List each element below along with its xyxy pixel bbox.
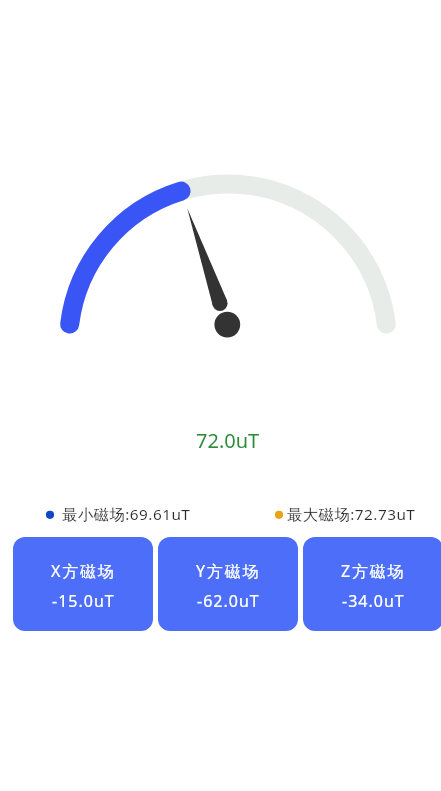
button[interactable]: X方磁场 (13, 537, 153, 631)
button[interactable]: Z方磁场 (303, 537, 441, 631)
staticText: Y方磁场 (196, 560, 261, 582)
staticText: 72.0uT (196, 427, 260, 454)
button[interactable]: Y方磁场 (158, 537, 298, 631)
staticText: -15.0uT (52, 590, 115, 612)
button[interactable]: 最大磁场:72.73uT (270, 500, 423, 530)
staticText: -62.0uT (197, 590, 260, 612)
staticText: X方磁场 (51, 560, 116, 582)
other: Magnetic field gauge (0, 0, 441, 791)
staticText: 最小磁场:69.61uT (62, 504, 191, 525)
staticText: Z方磁场 (341, 560, 406, 582)
button[interactable]: 最小磁场:69.61uT (41, 500, 198, 530)
staticText: -34.0uT (342, 590, 405, 612)
staticText: 最大磁场:72.73uT (287, 504, 416, 525)
